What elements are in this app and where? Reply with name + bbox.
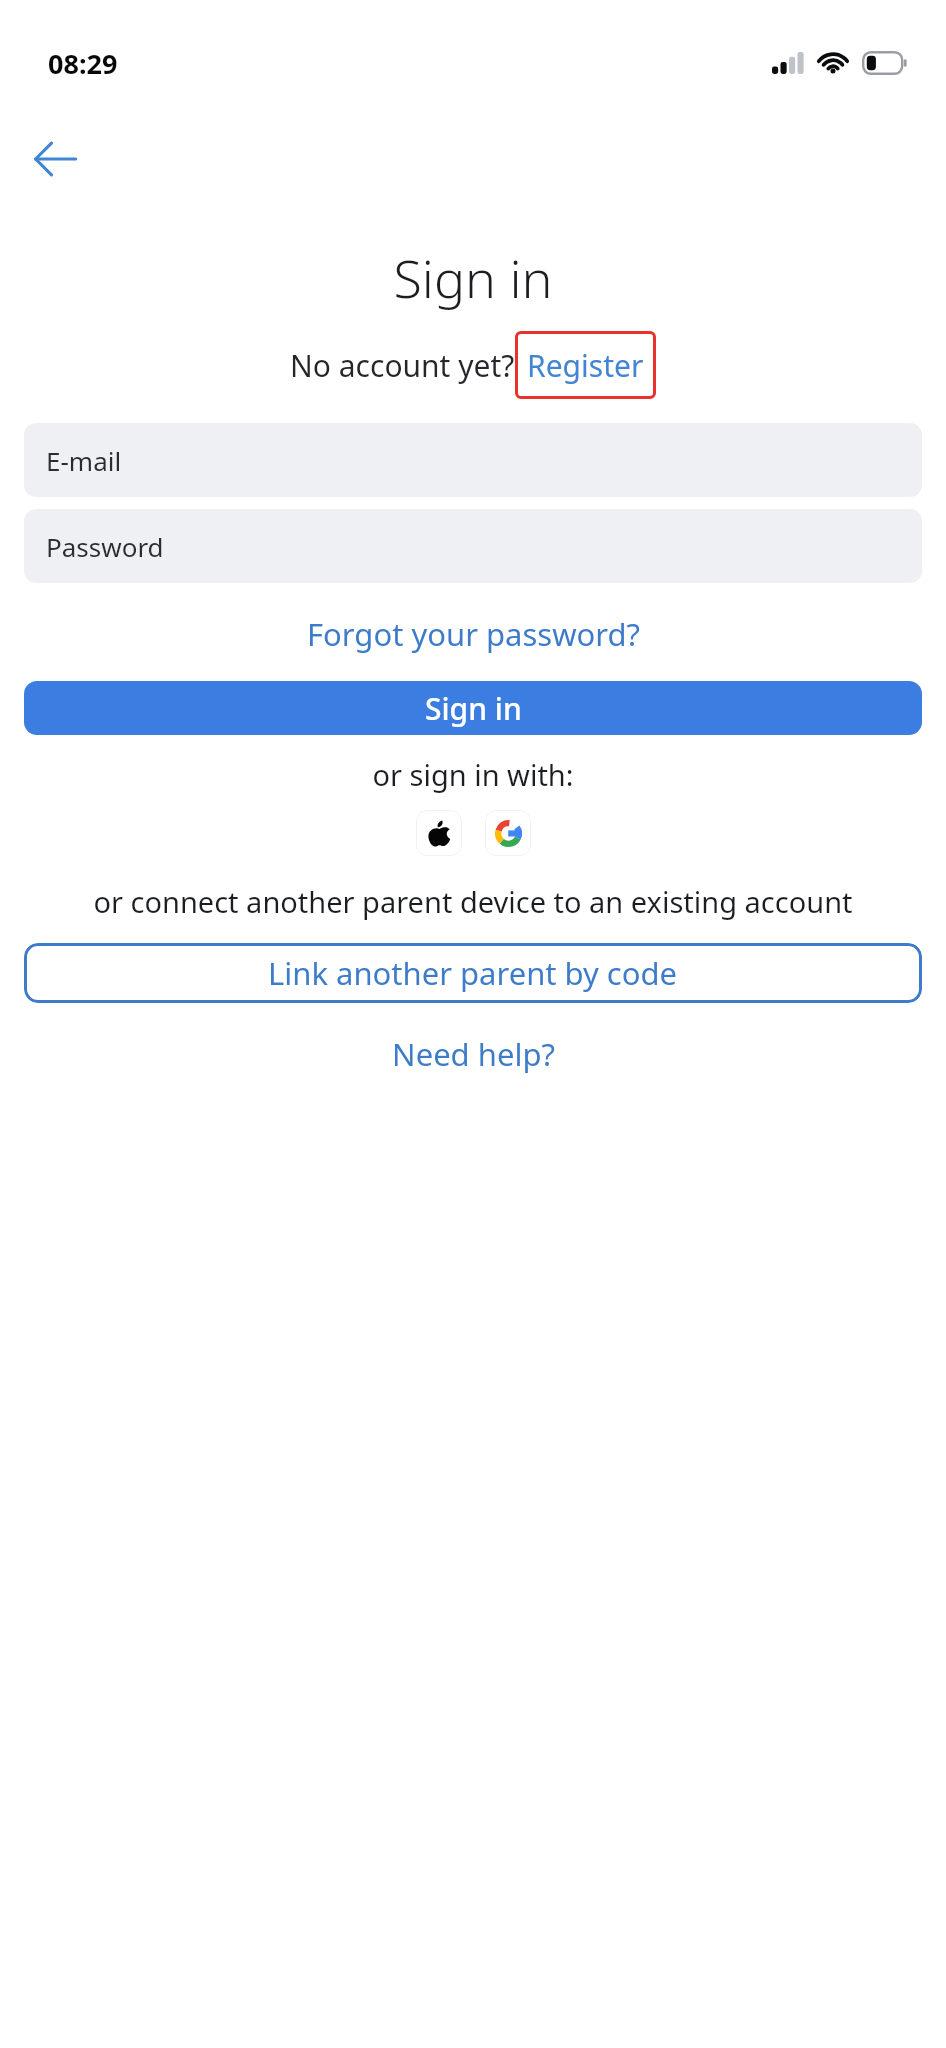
button[interactable]: Password xyxy=(24,509,922,583)
staticText: or sign in with: xyxy=(0,755,946,794)
staticText: E-mail xyxy=(46,443,122,478)
staticText: Password xyxy=(46,529,164,564)
staticText: or connect another parent device to an e… xyxy=(36,882,910,921)
staticText: Need help? xyxy=(392,1033,555,1075)
button[interactable]: Sign in with Apple xyxy=(416,810,462,856)
staticText: Register xyxy=(527,345,644,386)
button[interactable]: Sign in with Google xyxy=(485,810,531,856)
button[interactable]: Register xyxy=(515,331,656,399)
staticText: Link another parent by code xyxy=(268,952,678,994)
button[interactable]: Back xyxy=(16,120,94,198)
staticText: 08:29 xyxy=(48,45,118,82)
button[interactable]: Forgot your password? xyxy=(0,603,946,665)
button[interactable]: E-mail xyxy=(24,423,922,497)
button[interactable]: Sign in xyxy=(24,681,922,735)
staticText: Sign in xyxy=(425,688,522,729)
staticText: Forgot your password? xyxy=(307,613,640,655)
button[interactable]: Link another parent by code xyxy=(24,943,922,1003)
staticText: No account yet? xyxy=(290,345,515,386)
staticText: Sign in xyxy=(0,242,946,313)
button[interactable]: Need help? xyxy=(0,1025,946,1083)
